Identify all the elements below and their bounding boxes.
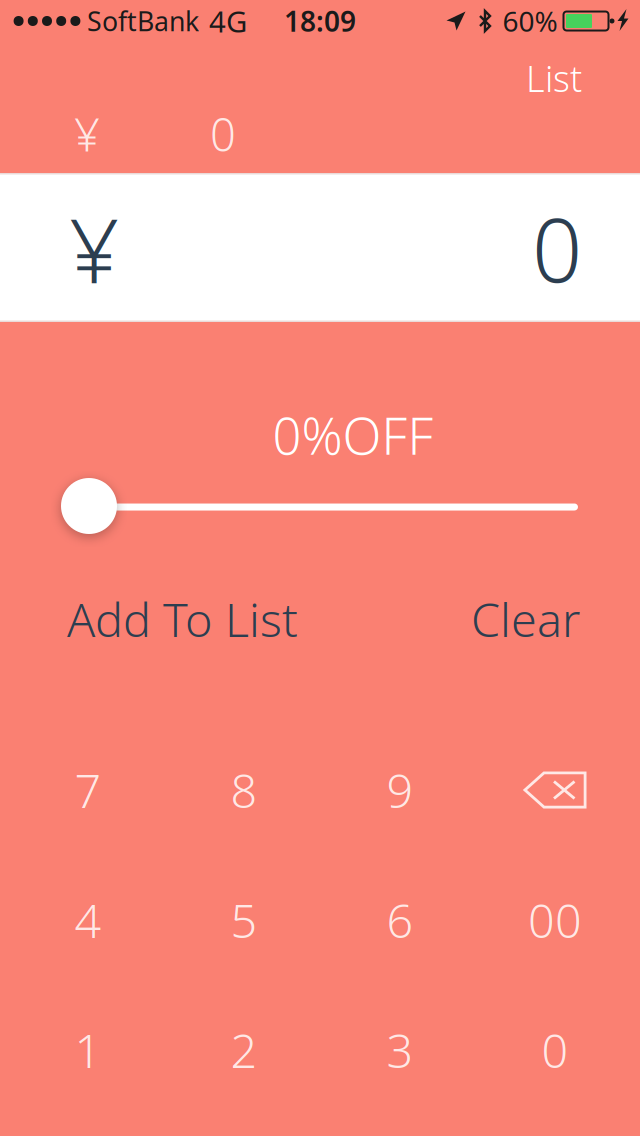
staticText: SoftBank [87, 3, 199, 39]
button[interactable]: 0 [477, 985, 633, 1115]
button[interactable]: 6 [322, 855, 478, 985]
button[interactable]: Add To List [67, 581, 317, 657]
staticText: 5 [230, 889, 257, 951]
button[interactable]: 9 [322, 725, 478, 855]
staticText: 9 [386, 759, 413, 821]
button[interactable]: 5 [166, 855, 322, 985]
staticText: 0%OFF [272, 401, 433, 469]
staticText: 0 [541, 1019, 568, 1081]
staticText: List [526, 54, 582, 102]
staticText: 1 [74, 1019, 101, 1081]
staticText: 00 [528, 889, 582, 951]
button[interactable]: Clear [440, 581, 580, 657]
button[interactable]: 2 [166, 985, 322, 1115]
staticText: 60% [502, 2, 557, 40]
staticText: 8 [230, 759, 257, 821]
button[interactable]: 00 [477, 855, 633, 985]
button[interactable]: 8 [166, 725, 322, 855]
button[interactable]: 7 [10, 725, 166, 855]
staticText: 2 [230, 1019, 257, 1081]
button[interactable]: Delete [477, 725, 633, 855]
button[interactable]: 3 [322, 985, 478, 1115]
staticText: Clear [471, 588, 580, 650]
button[interactable]: 4 [10, 855, 166, 985]
button[interactable]: 1 [10, 985, 166, 1115]
staticText: ¥ [74, 104, 100, 164]
staticText: ¥ [69, 191, 119, 307]
staticText: 0 [210, 104, 236, 164]
staticText: 0 [532, 190, 582, 306]
button[interactable]: Discount percentage [28, 466, 588, 546]
staticText: 3 [386, 1019, 413, 1081]
staticText: Add To List [67, 588, 298, 650]
staticText: 18:09 [284, 2, 356, 40]
staticText: 7 [74, 759, 101, 821]
staticText: 4 [74, 889, 101, 951]
staticText: 4G [209, 1, 247, 40]
staticText: 6 [386, 889, 413, 951]
button[interactable]: List [452, 51, 582, 105]
